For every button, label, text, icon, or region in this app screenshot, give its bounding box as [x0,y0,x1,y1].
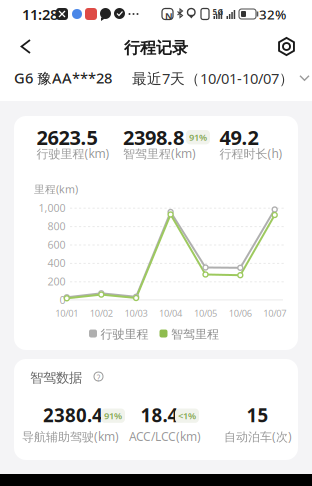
staticText: 10/04 [159,307,182,319]
staticText: 600 [47,237,65,252]
staticText: 400 [47,256,65,270]
staticText: 智驾里程(km) [123,145,196,161]
staticText: 智驾里程 [171,327,219,342]
staticText: G6 豫AA***28 [14,68,112,88]
staticText: 2623.5 [36,124,97,151]
staticText: 自动泊车(次) [224,428,292,444]
button[interactable]: G6 豫AA***28 [14,68,112,88]
staticText: 行程记录 [124,38,188,58]
staticText: 10/06 [229,307,252,319]
staticText: 2380.4 [43,402,103,427]
staticText: 导航辅助驾驶(km) [22,428,119,444]
staticText: 5G [212,6,223,17]
staticText: 10/03 [125,307,148,319]
staticText: ? [97,373,100,384]
button[interactable]: ? [94,372,103,382]
staticText: 15 [246,402,268,427]
staticText: 里程(km) [34,182,78,196]
staticText: 18.4 [140,402,178,427]
button[interactable] [6,34,46,59]
staticText: 10/02 [90,307,113,319]
staticText: 行驶里程(km) [36,145,109,161]
staticText: 2398.8 [123,124,184,151]
staticText: 10/01 [55,307,78,319]
staticText: ACC/LCC(km) [129,428,201,444]
staticText: 智驾数据 [30,369,82,386]
staticText: 32% [259,5,286,23]
staticText: 91% [104,409,122,422]
staticText: N [165,9,173,22]
staticText: 91% [189,131,207,143]
staticText: 800 [47,219,65,233]
staticText: 49.2 [219,124,258,151]
staticText: 10/07 [263,307,286,319]
staticText: 1,000 [38,201,65,215]
button[interactable]: 最近7天（10/01-10/07） [132,68,310,88]
staticText: 11:28 [22,4,58,24]
staticText: 行程时长(h) [219,145,282,161]
staticText: 0 [59,293,65,307]
staticText: 最近7天（10/01-10/07） [132,68,294,88]
staticText: 行驶里程 [100,327,148,342]
staticText: 10/05 [194,307,217,319]
staticText: 200 [47,274,65,288]
button[interactable] [266,34,307,59]
staticText: <1% [178,409,196,422]
